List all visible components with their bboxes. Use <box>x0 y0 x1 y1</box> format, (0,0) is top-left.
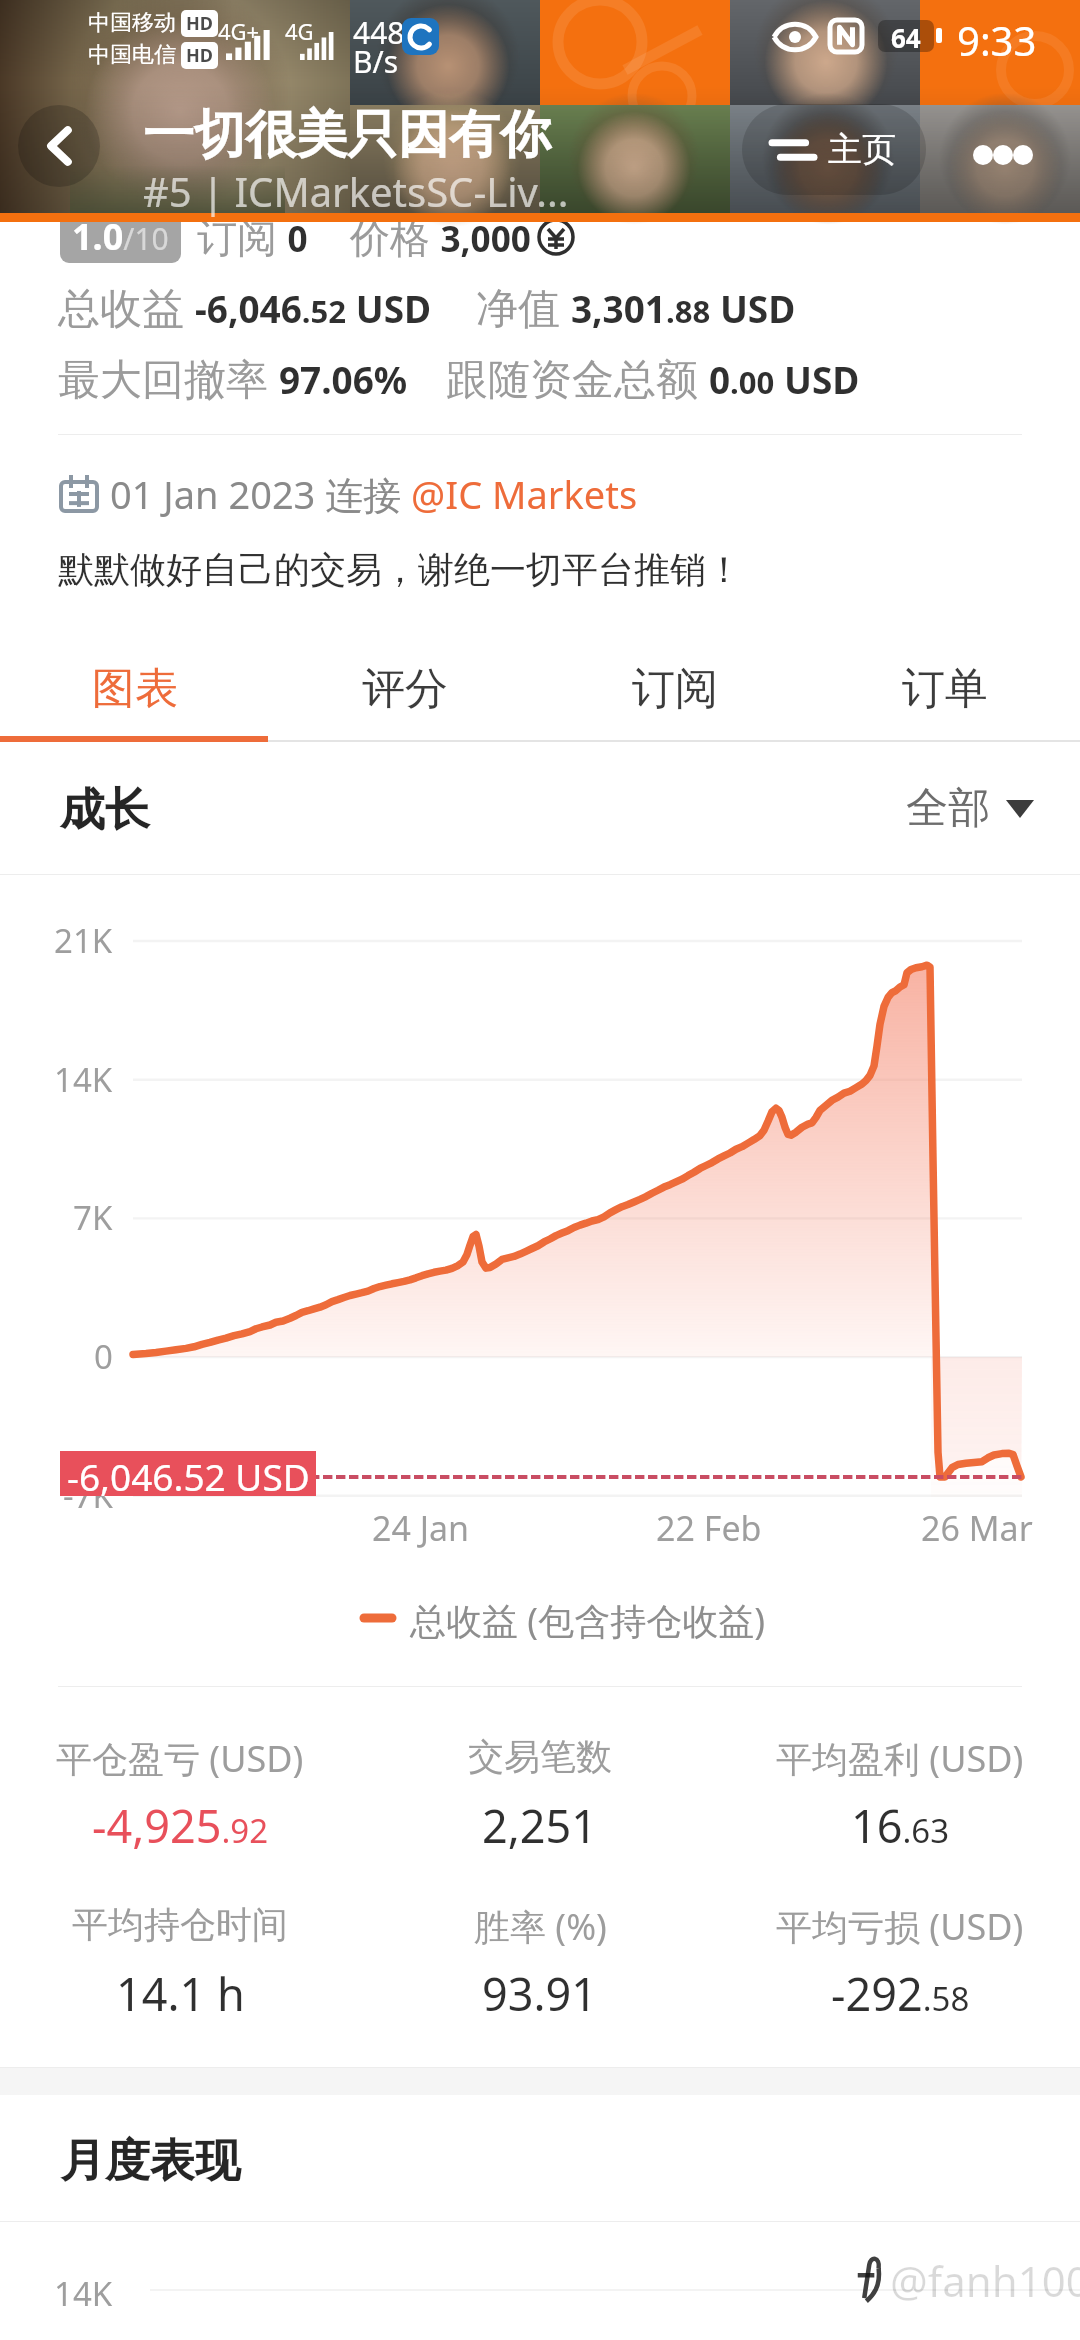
staticText: 价格 3,000 <box>350 209 531 264</box>
staticText: -4,925.92 <box>92 1795 269 1856</box>
staticText: -7K <box>63 1473 113 1518</box>
staticText: 交易笔数 <box>468 1734 612 1779</box>
staticText: 总收益 (包含持仓收益) <box>410 1596 765 1645</box>
staticText: 93.91 <box>482 1963 598 2024</box>
staticText: 16.63 <box>851 1795 950 1856</box>
button[interactable]: 订单 <box>810 636 1080 742</box>
staticText: 订阅 0 <box>197 209 308 264</box>
staticText: HD <box>186 11 213 36</box>
staticText: 主页 <box>828 128 896 171</box>
staticText: @fanh100 <box>890 2252 1080 2309</box>
staticText: 评分 <box>362 662 448 716</box>
staticText: 14K <box>54 2271 113 2316</box>
button[interactable]: 订阅 <box>540 636 810 742</box>
button[interactable]: 全部 <box>906 782 1034 835</box>
staticText: 平均持仓时间 <box>72 1902 288 1947</box>
button[interactable]: 主页 <box>742 104 926 195</box>
staticText: 图表 <box>92 662 178 716</box>
staticText: 24 Jan <box>372 1505 470 1551</box>
staticText: 最大回撤率 97.06% <box>58 349 408 406</box>
staticText: 默默做好自己的交易，谢绝一切平台推销！ <box>58 547 742 592</box>
staticText: 26 Mar <box>921 1505 1033 1551</box>
staticText: 2,251 <box>482 1795 598 1856</box>
staticText: 9:33 <box>957 13 1037 67</box>
staticText: 14.1 h <box>116 1963 245 2024</box>
staticText: -292.58 <box>831 1963 970 2024</box>
staticText: 胜率 (%) <box>474 1902 607 1951</box>
staticText: 净值 3,301.88 USD <box>476 278 796 335</box>
staticText: 总收益 -6,046.52 USD <box>58 278 432 335</box>
button[interactable]: 评分 <box>270 636 540 742</box>
staticText: 中国电信 <box>88 41 176 69</box>
button[interactable]: More options <box>958 110 1048 200</box>
staticText: 平仓盈亏 (USD) <box>56 1734 304 1783</box>
staticText: #5 | ICMarketsSC-Liv... <box>143 164 569 218</box>
staticText: 订单 <box>902 662 988 716</box>
staticText: B/s <box>353 41 399 82</box>
staticText: 4G+ <box>218 16 260 46</box>
staticText: 全部 <box>906 782 990 835</box>
staticText: 跟随资金总额 0.00 USD <box>446 349 860 406</box>
staticText: 月度表现 <box>60 2133 240 2190</box>
staticText: 订阅 <box>632 662 718 716</box>
staticText: -6,046.52 USD <box>67 1451 310 1496</box>
staticText: HD <box>186 43 213 68</box>
staticText: 1.0/10 <box>72 212 169 261</box>
staticText: 01 Jan 2023 连接 @IC Markets <box>110 468 638 520</box>
staticText: 一切很美只因有你 <box>143 103 551 167</box>
staticText: 448 <box>353 12 405 53</box>
staticText: 4G <box>285 16 314 46</box>
staticText: 平均盈利 (USD) <box>776 1734 1024 1783</box>
staticText: 14K <box>54 1057 113 1102</box>
button[interactable]: 图表 <box>0 636 270 742</box>
button[interactable]: Back <box>18 105 100 187</box>
staticText: 7K <box>73 1195 113 1240</box>
staticText: 成长 <box>60 782 150 839</box>
staticText: 64 <box>891 20 921 52</box>
staticText: 中国移动 <box>88 9 176 37</box>
staticText: 22 Feb <box>656 1505 762 1551</box>
staticText: 平均亏损 (USD) <box>776 1902 1024 1951</box>
staticText: 0 <box>94 1334 113 1379</box>
staticText: 21K <box>54 918 113 963</box>
